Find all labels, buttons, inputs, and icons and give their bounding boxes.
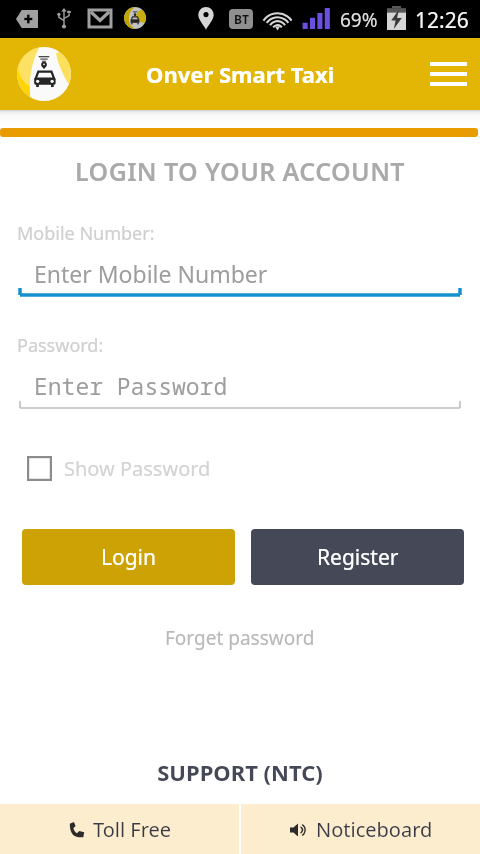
button[interactable]: Register — [251, 529, 464, 585]
staticText: 12:26 — [415, 6, 469, 35]
staticText: Login — [101, 543, 157, 572]
staticText: Mobile Number: — [17, 221, 155, 246]
staticText: Enter Mobile Number — [34, 258, 268, 289]
staticText: Enter Password — [34, 370, 228, 401]
button[interactable]: Login — [22, 529, 235, 585]
button[interactable]: Toll Free — [0, 804, 239, 854]
staticText: SUPPORT (NTC) — [0, 757, 480, 787]
button[interactable]: Forget password — [165, 625, 315, 651]
staticText: Toll Free — [93, 816, 172, 843]
staticText: Noticeboard — [316, 816, 433, 843]
staticText: Password: — [17, 333, 104, 358]
staticText: Register — [317, 543, 399, 572]
button[interactable]: Show Password — [27, 455, 211, 482]
staticText: BT — [234, 11, 249, 27]
staticText: Onver Smart Taxi — [146, 59, 335, 89]
staticText: LOGIN TO YOUR ACCOUNT — [0, 154, 480, 188]
staticText: 69% — [340, 7, 378, 33]
button[interactable]: Menu — [420, 46, 476, 102]
button[interactable]: Noticeboard — [241, 804, 480, 854]
staticText: Show Password — [64, 455, 211, 482]
